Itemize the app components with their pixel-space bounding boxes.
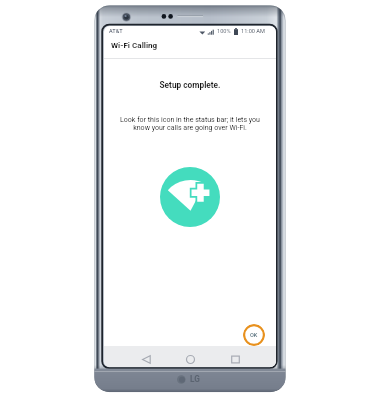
staticText: OK	[250, 332, 258, 339]
staticText: 100%	[217, 28, 231, 35]
staticText: AT&T	[109, 28, 123, 35]
staticText: 11:00 AM	[241, 28, 265, 35]
button[interactable]: Home	[183, 352, 197, 366]
staticText: LG	[190, 374, 200, 384]
button[interactable]: Back	[139, 352, 153, 366]
staticText: Wi-Fi Calling	[111, 40, 158, 49]
button[interactable]: Recent apps	[228, 352, 242, 366]
button[interactable]: OK	[243, 324, 265, 346]
staticText: Look for this icon in the status bar; it…	[119, 115, 261, 132]
staticText: Setup complete.	[159, 80, 221, 90]
